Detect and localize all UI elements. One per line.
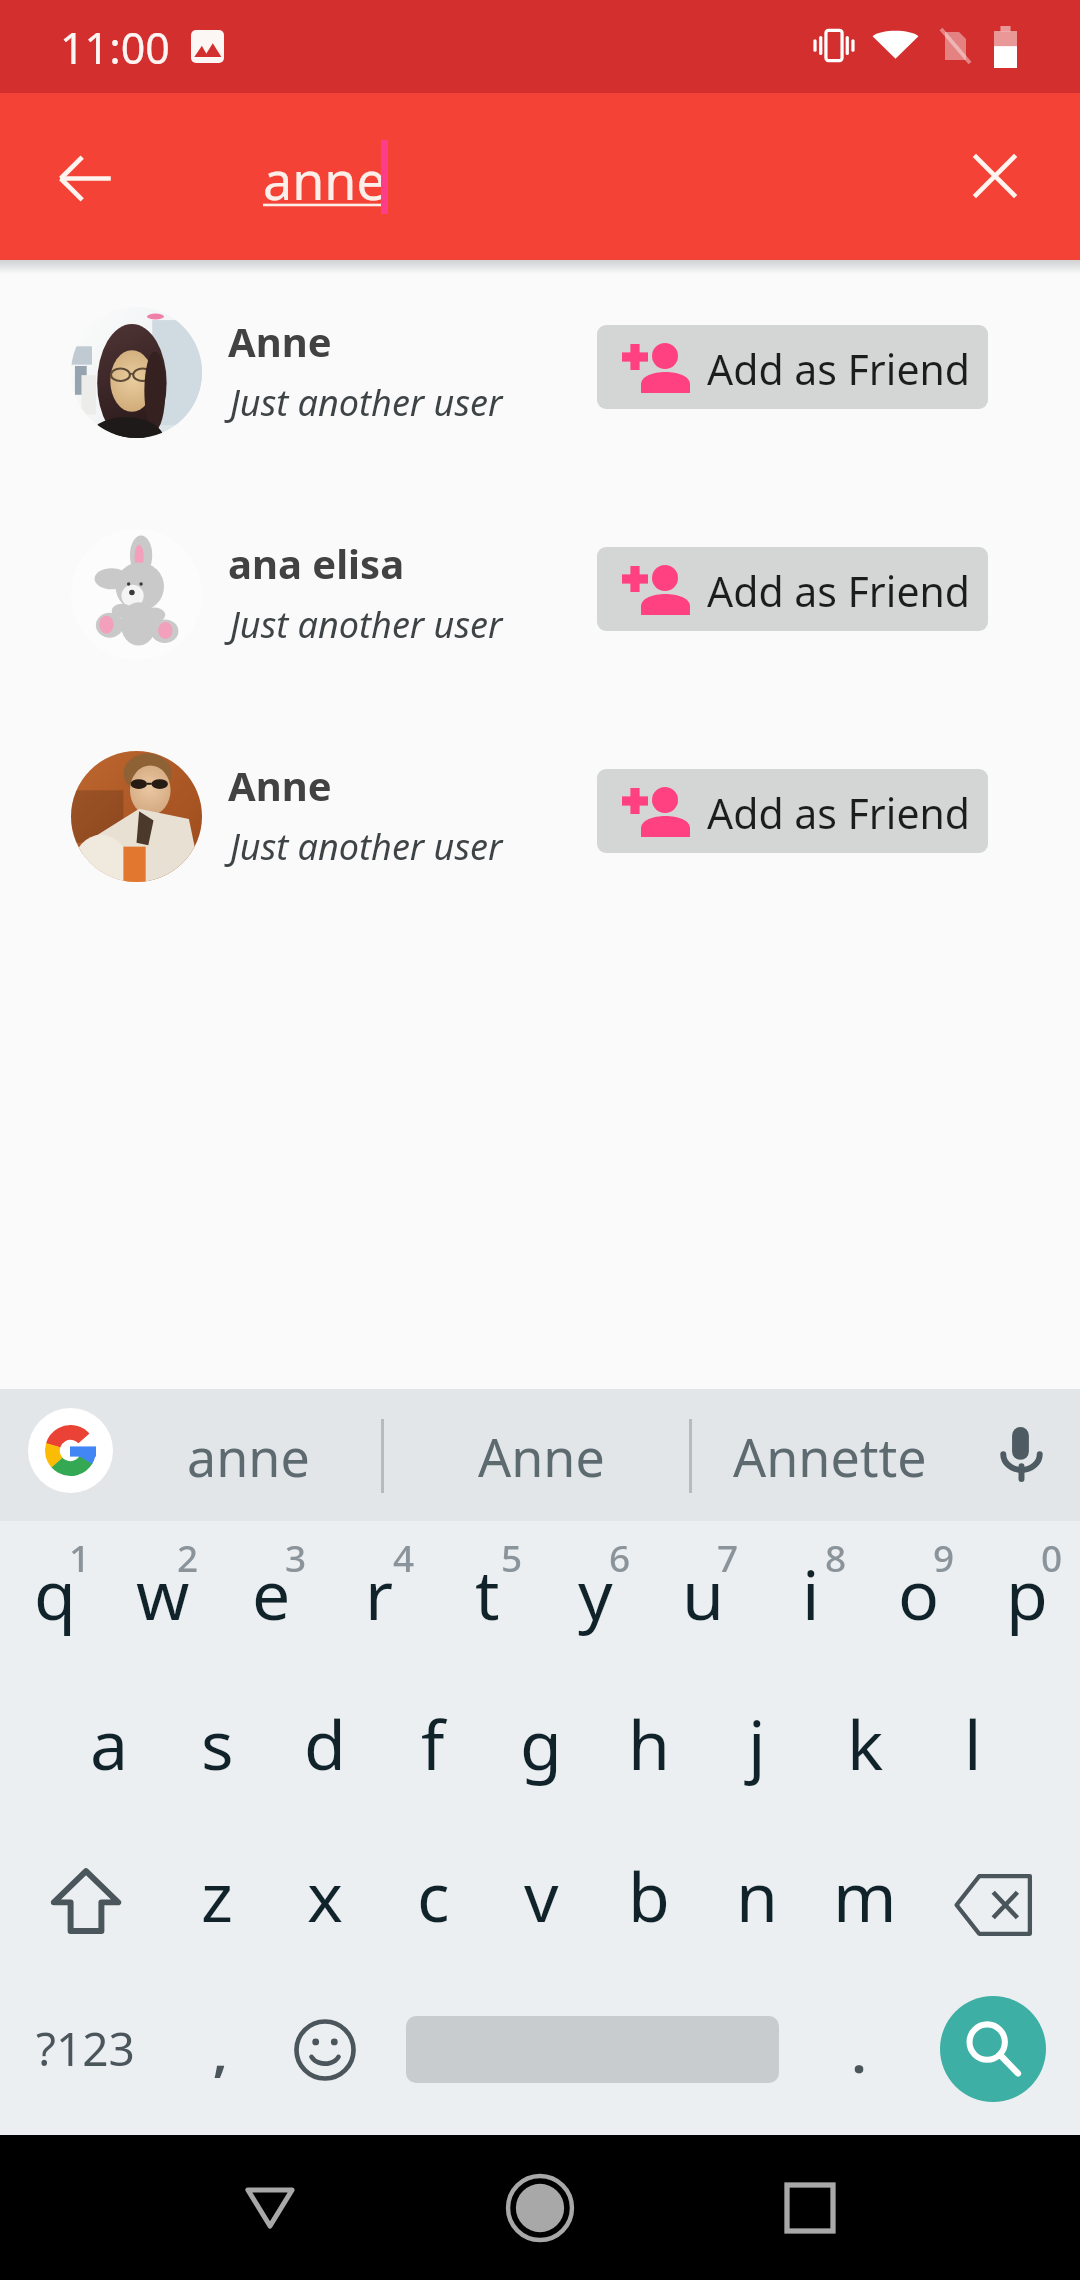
button[interactable]: a xyxy=(55,1665,163,1815)
staticText: 2 xyxy=(177,1532,199,1582)
button[interactable]: x xyxy=(271,1817,379,1967)
button[interactable]: j xyxy=(703,1665,811,1815)
staticText: u xyxy=(682,1547,725,1640)
button[interactable]: Recent apps xyxy=(735,2135,885,2280)
button[interactable]: Backspace xyxy=(908,1830,1080,1980)
staticText: Add as Friend xyxy=(707,785,971,841)
staticText: o xyxy=(898,1547,940,1640)
button[interactable]: y xyxy=(541,1515,649,1665)
button[interactable]: k xyxy=(811,1665,919,1815)
staticText: g xyxy=(520,1697,562,1790)
staticText: 5 xyxy=(501,1532,523,1582)
button[interactable]: v xyxy=(487,1817,595,1967)
button[interactable] xyxy=(0,290,1080,512)
staticText: Add as Friend xyxy=(707,563,971,619)
button[interactable]: n xyxy=(703,1817,811,1967)
button[interactable]: Annette xyxy=(733,1421,927,1492)
staticText: 9 xyxy=(933,1532,955,1582)
staticText: m xyxy=(833,1849,897,1942)
staticText: Just another user xyxy=(230,822,503,871)
staticText: 0 xyxy=(1041,1532,1063,1582)
staticText: r xyxy=(365,1547,394,1640)
button[interactable]: g xyxy=(487,1665,595,1815)
button[interactable]: s xyxy=(163,1665,271,1815)
button[interactable]: Voice input xyxy=(1001,1427,1042,1480)
staticText: 1 xyxy=(69,1532,91,1582)
staticText: 8 xyxy=(825,1532,847,1582)
button[interactable]: Search xyxy=(940,1996,1046,2102)
staticText: h xyxy=(628,1697,671,1790)
staticText: 11:00 xyxy=(60,18,170,77)
staticText: t xyxy=(475,1547,500,1640)
staticText: f xyxy=(421,1697,445,1790)
staticText: 7 xyxy=(717,1532,739,1582)
button[interactable]: Add as Friend xyxy=(597,325,988,409)
staticText: l xyxy=(964,1697,982,1790)
staticText: c xyxy=(417,1849,450,1942)
button[interactable]: Home xyxy=(465,2135,615,2280)
button[interactable]: Anne xyxy=(478,1421,605,1492)
button[interactable] xyxy=(402,1982,782,2117)
staticText: , xyxy=(213,2019,228,2087)
staticText: 3 xyxy=(285,1532,307,1582)
button[interactable]: d xyxy=(271,1665,379,1815)
button[interactable]: Add as Friend xyxy=(597,769,988,853)
button[interactable]: , xyxy=(165,1997,275,2132)
staticText: k xyxy=(847,1697,884,1790)
button[interactable]: Emoji xyxy=(270,1982,380,2117)
button[interactable]: z xyxy=(163,1817,271,1967)
button[interactable]: b xyxy=(595,1817,703,1967)
staticText: e xyxy=(252,1547,291,1640)
button[interactable]: t xyxy=(433,1515,541,1665)
button[interactable]: Clear search xyxy=(953,134,1037,218)
staticText: 4 xyxy=(393,1532,415,1582)
staticText: ?123 xyxy=(36,2017,135,2080)
staticText: Just another user xyxy=(230,600,503,649)
button[interactable]: anne xyxy=(187,1421,310,1492)
button[interactable]: h xyxy=(595,1665,703,1815)
button[interactable]: i xyxy=(757,1515,865,1665)
button[interactable]: f xyxy=(379,1665,487,1815)
staticText: a xyxy=(90,1697,129,1790)
button[interactable]: Shift xyxy=(0,1826,172,1976)
button[interactable]: Navigate up xyxy=(43,136,127,220)
staticText: s xyxy=(201,1697,234,1790)
button[interactable]: r xyxy=(325,1515,433,1665)
button[interactable]: o xyxy=(865,1515,973,1665)
staticText: z xyxy=(201,1849,233,1942)
button[interactable]: ?123 xyxy=(0,1981,176,2116)
staticText: x xyxy=(307,1849,343,1942)
staticText: Just another user xyxy=(230,378,503,427)
button[interactable]: . xyxy=(804,1998,914,2133)
button[interactable]: Google xyxy=(28,1408,113,1493)
button[interactable]: q xyxy=(1,1515,109,1665)
staticText: y xyxy=(578,1547,613,1640)
button[interactable]: Back xyxy=(195,2135,345,2280)
staticText: 6 xyxy=(609,1532,631,1582)
staticText: i xyxy=(802,1547,820,1640)
staticText: d xyxy=(304,1697,346,1790)
button[interactable]: m xyxy=(811,1817,919,1967)
button[interactable] xyxy=(0,734,1080,956)
staticText: p xyxy=(1006,1547,1048,1640)
button[interactable]: w xyxy=(109,1515,217,1665)
button[interactable]: c xyxy=(379,1817,487,1967)
staticText: b xyxy=(628,1849,670,1942)
staticText: Anne xyxy=(228,758,332,812)
staticText: Add as Friend xyxy=(707,341,971,397)
staticText: n xyxy=(736,1849,779,1942)
button[interactable]: l xyxy=(919,1665,1027,1815)
button[interactable]: p xyxy=(973,1515,1080,1665)
staticText: v xyxy=(524,1849,559,1942)
staticText: anne xyxy=(263,144,386,215)
staticText: Anne xyxy=(228,314,332,368)
staticText: ana elisa xyxy=(228,536,405,590)
staticText: q xyxy=(34,1547,76,1640)
button[interactable]: e xyxy=(217,1515,325,1665)
staticText: j xyxy=(748,1697,766,1790)
button[interactable]: u xyxy=(649,1515,757,1665)
button[interactable]: Add as Friend xyxy=(597,547,988,631)
button[interactable] xyxy=(0,512,1080,734)
staticText: w xyxy=(136,1547,190,1640)
staticText: . xyxy=(852,2020,867,2088)
